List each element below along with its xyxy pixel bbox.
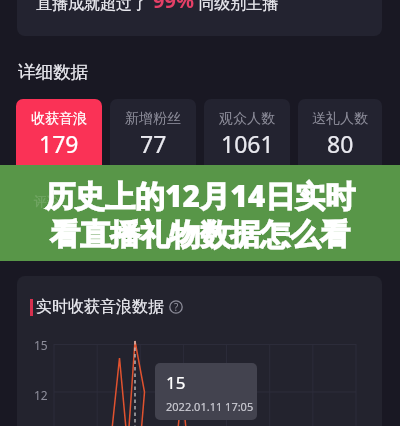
button[interactable]: 帮助 [169,300,183,314]
staticText: 2022.01.11 17:05 [166,399,254,414]
staticText: 观众人数 [219,110,275,128]
button[interactable]: 送礼人数 [298,99,382,177]
staticText: 收获音浪 [31,110,87,128]
staticText: 实时收获音浪数据 [36,297,164,317]
button[interactable]: 观众人数 [204,99,290,177]
staticText: 详细数据 [18,61,88,83]
staticText: 新增粉丝 [125,110,181,128]
button[interactable]: 收获音浪 [16,99,102,177]
staticText: 179 [39,128,79,159]
staticText: 80 [327,128,354,159]
button[interactable]: 新增粉丝 [110,99,196,177]
staticText: 1061 [221,128,274,159]
staticText: 直播成就超过了 [36,0,153,14]
staticText: 同级别主播 [194,0,279,14]
staticText: 15 [34,337,48,353]
staticText: 77 [140,128,167,159]
staticText: 送礼人数 [312,110,368,128]
staticText: 99% [153,0,194,14]
staticText: 15 [166,371,186,394]
staticText: 看直播礼物数据怎么看 [50,216,350,254]
staticText: 评论 [34,193,60,209]
staticText: 历史上的12月14日实时 [45,175,356,216]
staticText: 12 [34,387,48,403]
staticText: ? [174,300,179,314]
